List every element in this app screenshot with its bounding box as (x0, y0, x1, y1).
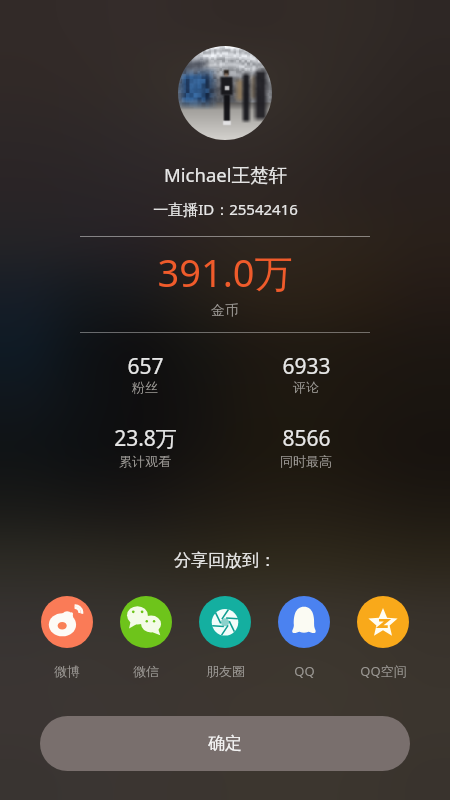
staticText: 评论 (293, 379, 319, 395)
staticText: 6933 (282, 352, 331, 381)
staticText: QQ (294, 662, 315, 680)
staticText: 朋友圈 (206, 663, 245, 679)
button[interactable]: 微博 (32, 594, 102, 686)
staticText: 一直播ID：25542416 (153, 199, 298, 219)
staticText: 23.8万 (114, 424, 177, 453)
button[interactable]: QQ (269, 594, 339, 686)
staticText: Michael王楚轩 (164, 162, 287, 187)
staticText: 391.0万 (157, 246, 293, 298)
staticText: 657 (127, 352, 164, 381)
staticText: 累计观看 (119, 453, 171, 469)
staticText: 确定 (208, 733, 242, 754)
button[interactable]: QQ空间 (348, 594, 418, 686)
staticText: 粉丝 (132, 379, 158, 395)
staticText: 微博 (54, 663, 80, 679)
staticText: 分享回放到： (174, 550, 276, 571)
staticText: 同时最高 (280, 453, 332, 469)
staticText: 金币 (211, 302, 239, 320)
staticText: 8566 (282, 424, 331, 453)
button[interactable]: 朋友圈 (190, 594, 260, 686)
staticText: 微信 (133, 663, 159, 679)
staticText: QQ空间 (360, 662, 407, 680)
button[interactable]: 微信 (111, 594, 181, 686)
button[interactable]: 确定 (40, 716, 410, 771)
